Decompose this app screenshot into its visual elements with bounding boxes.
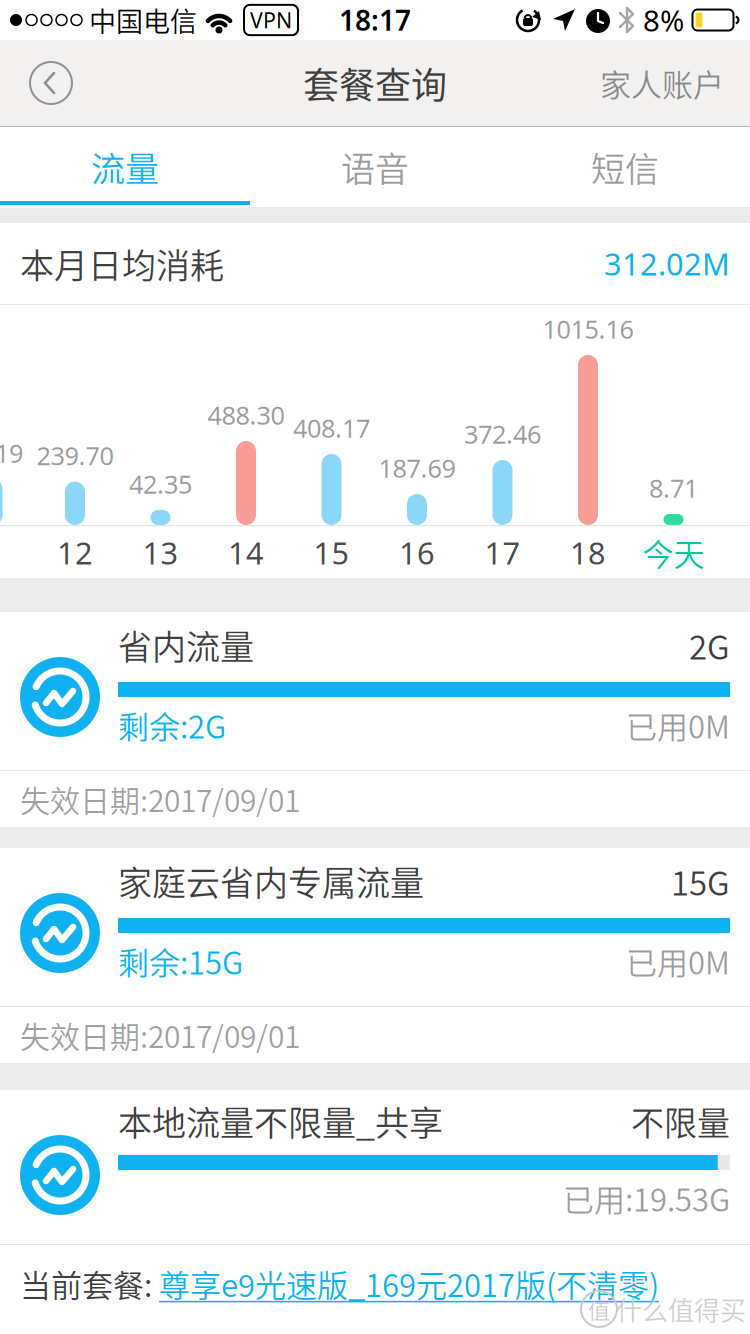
staticText: 失效日期:2017/09/01 <box>20 777 300 821</box>
staticText: 18:17 <box>339 1 411 39</box>
button[interactable]: 流量 <box>0 129 250 205</box>
staticText: 18 <box>570 532 606 573</box>
staticText: 失效日期:2017/09/01 <box>20 1013 300 1057</box>
staticText: 剩余:2G <box>118 703 226 747</box>
staticText: 当前套餐: <box>20 1261 159 1306</box>
button[interactable]: 语音 <box>250 129 500 205</box>
staticText: 187.69 <box>378 451 455 485</box>
staticText: 套餐查询 <box>303 57 447 109</box>
staticText: 13 <box>142 532 178 573</box>
staticText: 尊享e9光速版_169元2017版(不清零) <box>159 1261 659 1306</box>
staticText: 16 <box>399 532 435 573</box>
button[interactable]: 家人账户 <box>600 61 724 105</box>
staticText: 省内流量 <box>118 620 254 670</box>
staticText: 语音 <box>341 142 409 192</box>
staticText: 15 <box>313 532 349 573</box>
staticText: 今天 <box>642 530 704 575</box>
staticText: 已用0M <box>626 703 730 747</box>
staticText: 家庭云省内专属流量 <box>118 856 424 906</box>
staticText: 8% <box>643 0 684 39</box>
button[interactable]: 短信 <box>500 129 750 205</box>
staticText: 17 <box>484 532 520 573</box>
staticText: 2G <box>689 621 730 669</box>
staticText: 本月日均消耗 <box>20 239 224 288</box>
staticText: VPN <box>250 6 292 34</box>
staticText: 中国电信 <box>89 0 197 40</box>
staticText: 14 <box>228 532 264 573</box>
staticText: 15G <box>671 857 730 905</box>
staticText: 12 <box>57 532 93 573</box>
button[interactable] <box>30 62 72 104</box>
staticText: 剩余:15G <box>118 939 243 983</box>
staticText: 408.17 <box>293 411 370 445</box>
staticText: 流量 <box>91 142 159 192</box>
button[interactable]: 尊享e9光速版_169元2017版(不清零) <box>159 1261 659 1306</box>
staticText: 488.30 <box>207 398 284 432</box>
staticText: 已用0M <box>626 939 730 983</box>
staticText: 239.70 <box>36 439 113 472</box>
staticText: 什么值得买 <box>616 1290 746 1328</box>
staticText: 312.02M <box>604 243 730 284</box>
staticText: 19 <box>0 436 23 470</box>
staticText: 本地流量不限量_共享 <box>118 1096 443 1146</box>
staticText: 42.35 <box>129 467 192 501</box>
staticText: 1015.16 <box>542 312 633 346</box>
staticText: 家人账户 <box>600 61 724 105</box>
staticText: 不限量 <box>631 1097 730 1145</box>
staticText: 短信 <box>591 142 659 192</box>
staticText: 372.46 <box>464 417 541 451</box>
staticText: 值 <box>588 1293 610 1325</box>
staticText: 8.71 <box>649 471 698 505</box>
staticText: 已用:19.53G <box>563 1176 730 1220</box>
